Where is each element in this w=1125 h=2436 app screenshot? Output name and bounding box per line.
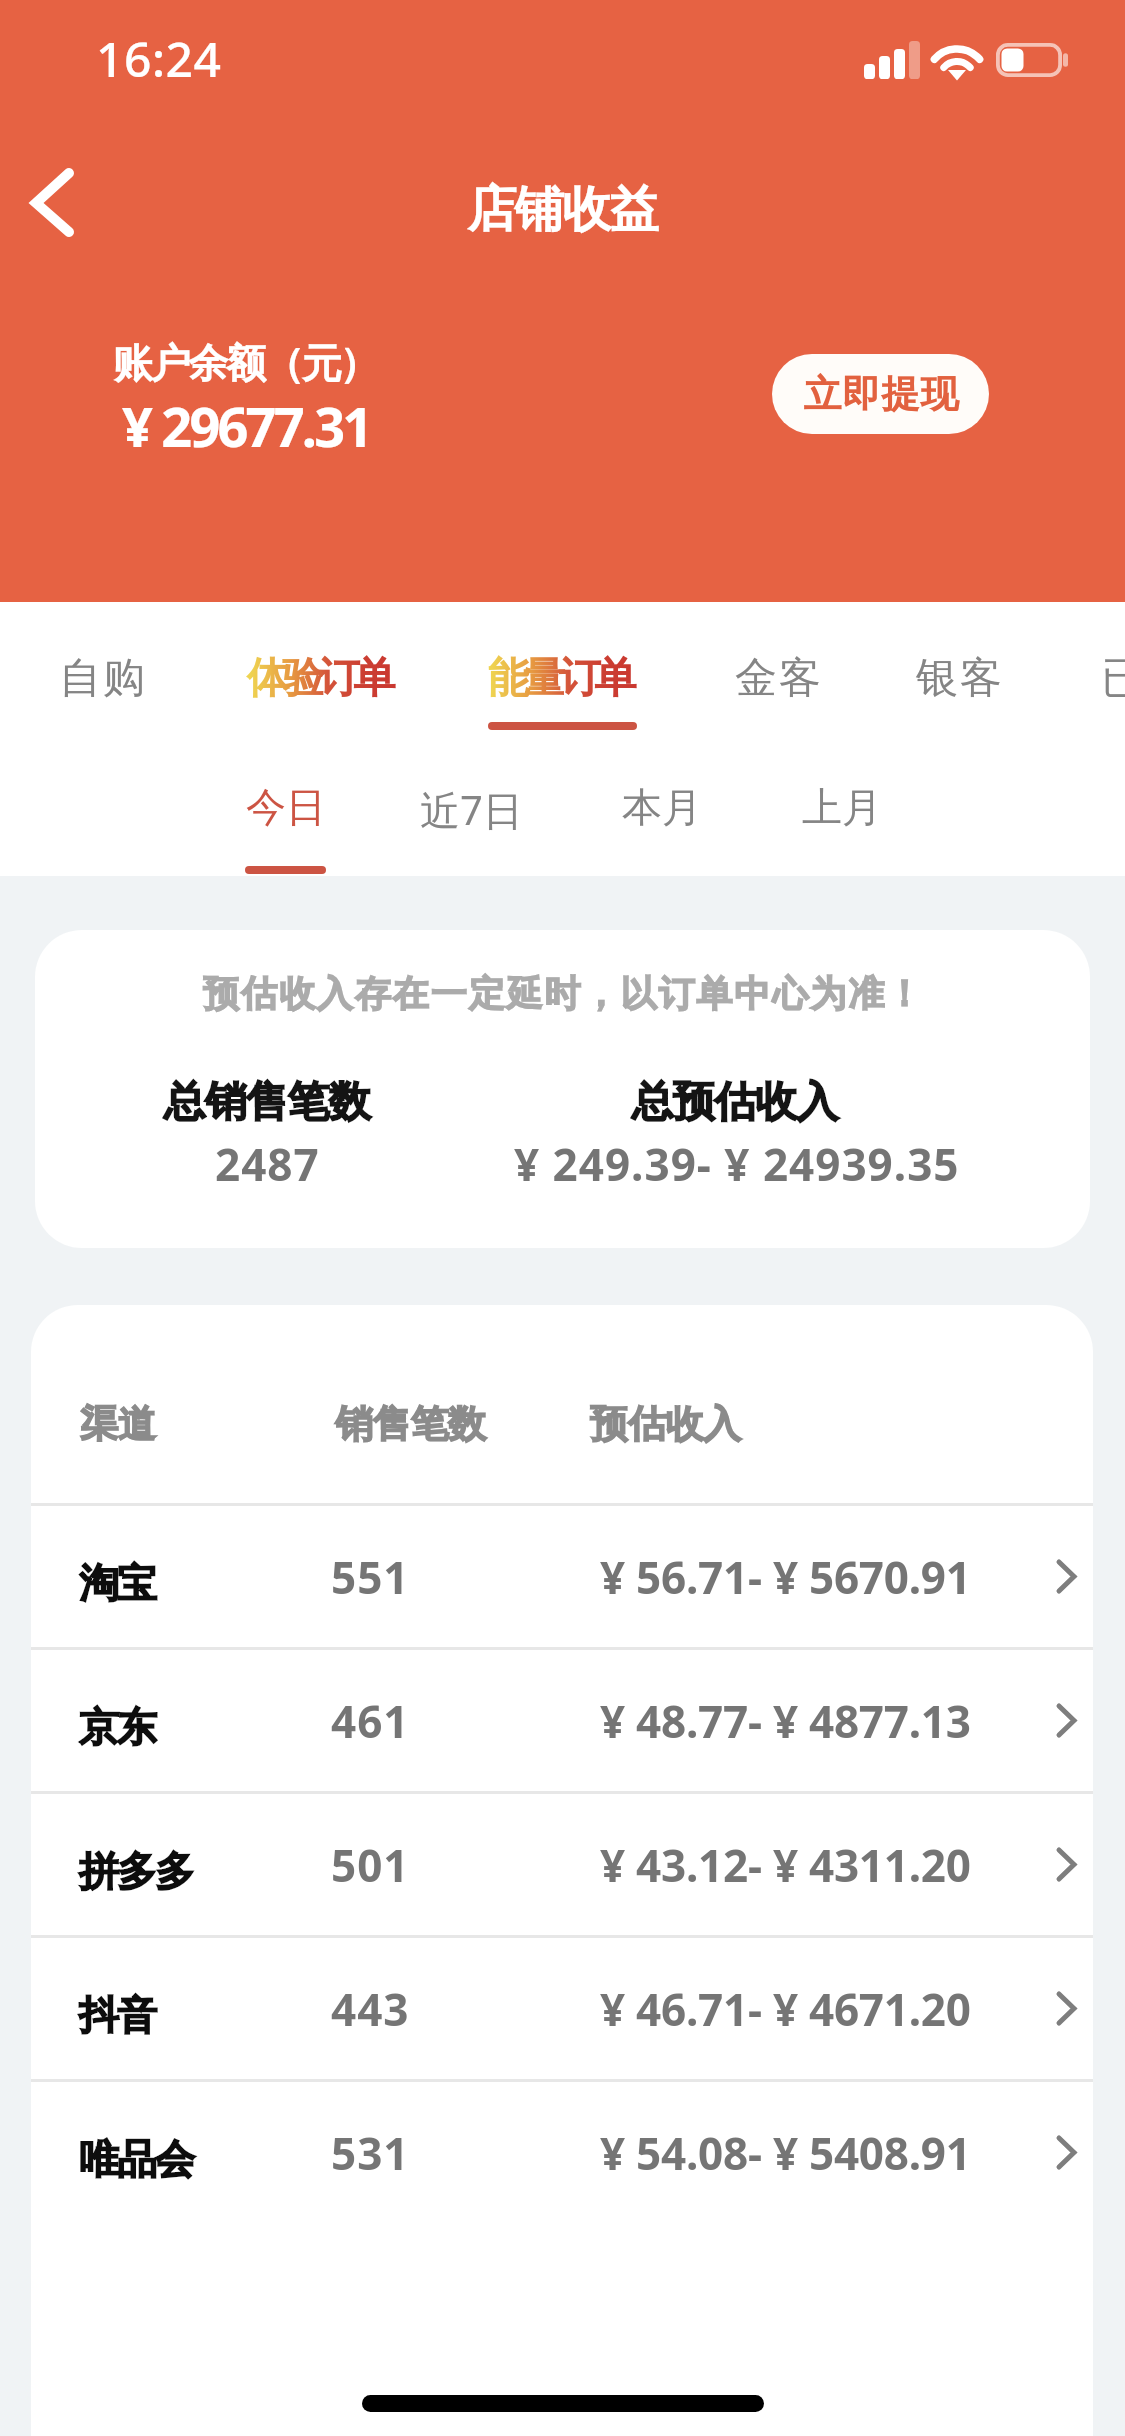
staticText: ¥ 54.08- ¥ 5408.91: [600, 2123, 971, 2183]
staticText: 531: [331, 2123, 410, 2183]
staticText: 金客: [734, 652, 822, 705]
button[interactable]: 能量订单: [471, 624, 655, 746]
button[interactable]: 上月: [782, 757, 900, 876]
button[interactable]: 唯品会: [31, 2082, 1093, 2223]
staticText: 体验订单: [250, 652, 392, 705]
button[interactable]: 自购: [38, 624, 156, 746]
staticText: 唯品会: [80, 2134, 194, 2184]
staticText: 近7日: [420, 782, 523, 837]
staticText: 京东: [80, 1702, 156, 1752]
staticText: 银客: [915, 652, 1003, 705]
button[interactable]: 本月: [602, 757, 720, 876]
button[interactable]: 近7日: [400, 757, 547, 876]
button[interactable]: 今日: [226, 757, 344, 876]
button[interactable]: 京东: [31, 1650, 1093, 1791]
button[interactable]: 抖音: [31, 1938, 1093, 2079]
staticText: 淘宝: [80, 1558, 156, 1608]
staticText: 501: [331, 1835, 410, 1895]
button[interactable]: 立即提现: [772, 354, 989, 434]
staticText: 今日: [246, 782, 326, 832]
staticText: 已: [1101, 652, 1125, 705]
staticText: 461: [331, 1691, 410, 1751]
staticText: 总销售笔数: [164, 1076, 370, 1129]
staticText: 443: [331, 1979, 410, 2039]
staticText: 自购: [58, 652, 146, 705]
staticText: 拼多多: [80, 1846, 194, 1896]
staticText: ¥ 43.12- ¥ 4311.20: [600, 1835, 971, 1895]
staticText: 总预估收入: [632, 1076, 838, 1129]
staticText: 预估收入存在一定延时，以订单中心为准！: [203, 971, 925, 1016]
staticText: 抖音: [80, 1990, 156, 2040]
staticText: ¥ 29677.31: [122, 389, 371, 463]
staticText: ¥ 46.71- ¥ 4671.20: [600, 1979, 971, 2039]
staticText: 本月: [622, 782, 702, 832]
button[interactable]: 银客: [895, 624, 1013, 746]
button[interactable]: Back: [0, 148, 110, 258]
staticText: 立即提现: [803, 370, 959, 418]
staticText: ¥ 56.71- ¥ 5670.91: [600, 1547, 971, 1607]
staticText: 账户余额（元）: [113, 338, 377, 388]
button[interactable]: 金客: [714, 624, 832, 746]
button[interactable]: 淘宝: [31, 1506, 1093, 1647]
staticText: 预估收入: [590, 1400, 741, 1448]
staticText: 551: [331, 1547, 410, 1607]
staticText: 渠道: [80, 1400, 156, 1448]
staticText: 2487: [215, 1134, 320, 1194]
staticText: 销售笔数: [335, 1400, 486, 1448]
staticText: ¥ 249.39- ¥ 24939.35: [514, 1134, 960, 1194]
staticText: 能量订单: [491, 652, 633, 705]
button[interactable]: 拼多多: [31, 1794, 1093, 1935]
staticText: 上月: [802, 782, 882, 832]
staticText: 店铺收益: [468, 179, 658, 241]
button[interactable]: 体验订单: [230, 624, 414, 746]
button[interactable]: 已: [1081, 624, 1125, 746]
staticText: ¥ 48.77- ¥ 4877.13: [600, 1691, 971, 1751]
staticText: 16:24: [96, 26, 222, 91]
